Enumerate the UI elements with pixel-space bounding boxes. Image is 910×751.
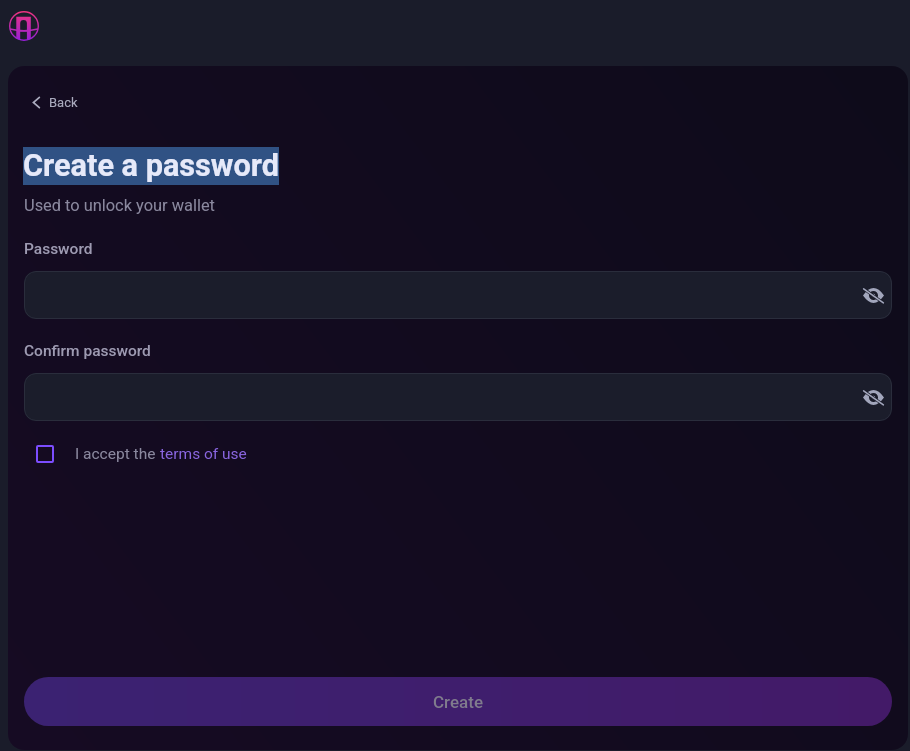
staticText: Used to unlock your wallet: [24, 196, 215, 215]
staticText: Create: [433, 692, 483, 712]
button[interactable]: Show password: [855, 379, 891, 415]
staticText: Create a password: [23, 148, 279, 184]
other: Accept terms of use checkbox: [36, 445, 54, 463]
button[interactable]: Show password: [24, 271, 892, 319]
staticText: I accept the: [75, 445, 160, 463]
button[interactable]: Show password: [855, 277, 891, 313]
button[interactable]: Create: [24, 677, 892, 726]
button[interactable]: Accept terms of use checkbox: [24, 439, 255, 469]
staticText: Back: [49, 95, 78, 110]
staticText: Confirm password: [24, 342, 151, 360]
button[interactable]: terms of use: [160, 445, 247, 463]
button[interactable]: Show password: [24, 373, 892, 421]
button[interactable]: Back: [14, 87, 94, 118]
button[interactable]: App logo: [9, 11, 39, 41]
staticText: Password: [24, 240, 93, 258]
